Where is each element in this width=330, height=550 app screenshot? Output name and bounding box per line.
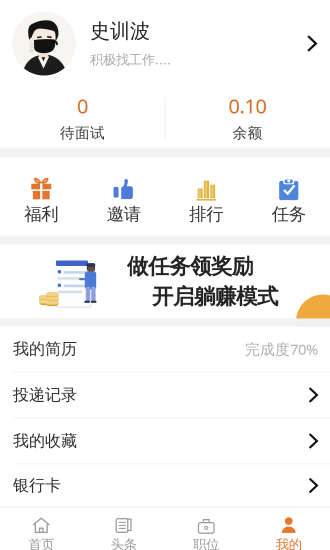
button[interactable]: 邀请 — [82, 157, 165, 236]
button[interactable]: 任务 — [247, 157, 330, 236]
staticText: 0 — [77, 92, 88, 119]
button[interactable]: 排行 — [165, 157, 247, 236]
button[interactable]: 银行卡 — [0, 464, 330, 506]
staticText: 我的收藏 — [13, 431, 77, 451]
staticText: 投递记录 — [13, 385, 77, 405]
staticText: 排行 — [189, 203, 223, 225]
staticText: 我的 — [276, 536, 302, 550]
button[interactable]: 福利 — [0, 157, 82, 236]
staticText: 福利 — [24, 203, 58, 225]
staticText: 待面试 — [60, 124, 105, 142]
button[interactable]: 头条 — [82, 507, 165, 550]
staticText: 职位 — [193, 536, 219, 550]
staticText: 头条 — [111, 536, 137, 550]
button[interactable]: 我的收藏 — [0, 418, 330, 463]
button[interactable]: 投递记录 — [0, 372, 330, 417]
button[interactable]: 职位 — [165, 507, 247, 550]
staticText: 任务 — [272, 203, 306, 225]
staticText: 首页 — [28, 536, 54, 550]
staticText: 邀请 — [107, 203, 141, 225]
button[interactable]: 我的简历 — [0, 326, 330, 371]
staticText: 我的简历 — [13, 339, 77, 359]
staticText: 做任务领奖励 — [127, 253, 253, 279]
button[interactable]: 史训波 — [0, 0, 330, 88]
staticText: 银行卡 — [13, 476, 61, 495]
staticText: 完成度70% — [245, 339, 318, 359]
button[interactable]: 我的 — [247, 507, 330, 550]
staticText: 余额 — [232, 124, 262, 142]
staticText: 积极找工作.... — [90, 50, 171, 68]
staticText: 开启躺赚模式 — [152, 283, 278, 310]
button[interactable]: 0.10 — [165, 88, 330, 148]
button[interactable]: 做任务领奖励 — [0, 244, 330, 318]
button[interactable]: 首页 — [0, 507, 82, 550]
staticText: 0.10 — [228, 92, 266, 119]
staticText: 史训波 — [90, 19, 150, 43]
button[interactable]: 0 — [0, 88, 165, 148]
